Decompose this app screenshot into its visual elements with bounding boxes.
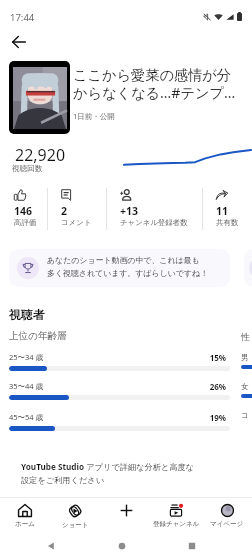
staticText: 性 bbox=[241, 331, 250, 342]
button[interactable]: +13 bbox=[106, 186, 202, 232]
button[interactable]: Create bbox=[101, 497, 151, 535]
staticText: 15% bbox=[9, 352, 226, 363]
staticText: あなたのショート動画の中で、これは最も 多く視聴されています。すばらしいですね！ bbox=[47, 255, 219, 278]
button[interactable]: 11 bbox=[202, 186, 252, 232]
button[interactable]: マイページ bbox=[202, 497, 252, 535]
staticText: 2 bbox=[61, 204, 68, 218]
staticText: チャンネル登録者数 bbox=[120, 218, 188, 227]
staticText: ショート bbox=[62, 521, 89, 529]
staticText: ホーム bbox=[15, 520, 35, 528]
button[interactable]: ショート bbox=[50, 497, 100, 535]
staticText: 男 bbox=[241, 353, 249, 362]
button[interactable]: あなたのショート動画の中で、これは最も 多く視聴されています。すばらしいですね！ bbox=[9, 249, 230, 287]
button[interactable]: 25〜34 歳 bbox=[9, 352, 230, 376]
staticText: 1日前・公開 bbox=[73, 111, 115, 121]
button[interactable]: 登録チャンネル bbox=[151, 497, 201, 535]
staticText: ここから愛菜の感情が分からなくなる…#テンプ… bbox=[73, 66, 243, 102]
staticText: 25〜34 歳 bbox=[9, 352, 44, 362]
staticText: 視聴回数 bbox=[12, 164, 43, 174]
staticText: 45〜54 歳 bbox=[9, 412, 44, 422]
staticText: 26% bbox=[9, 381, 226, 392]
button[interactable]: 2 bbox=[47, 186, 106, 232]
staticText: 登録チャンネル bbox=[153, 520, 200, 528]
staticText: YouTube Studio アプリで詳細な分析と高度な 設定をご利用ください bbox=[21, 461, 217, 485]
staticText: 17:44 bbox=[10, 11, 35, 24]
button[interactable]: 45〜54 歳 bbox=[9, 412, 230, 436]
button[interactable]: ここから愛菜の感情が分からなくなる…#テンプ… bbox=[0, 60, 252, 136]
staticText: コ bbox=[241, 411, 249, 420]
button[interactable]: YouTube Studio アプリで詳細な分析と高度な 設定をご利用ください bbox=[9, 455, 240, 500]
staticText: 146 bbox=[14, 204, 33, 218]
staticText: 女 bbox=[241, 382, 249, 391]
staticText: 共有数 bbox=[216, 218, 239, 227]
staticText: 上位の年齢層 bbox=[9, 330, 67, 342]
button[interactable]: ホーム bbox=[0, 497, 50, 535]
staticText: 35〜44 歳 bbox=[9, 381, 44, 391]
staticText: 22,920 bbox=[15, 144, 66, 166]
button[interactable]: 35〜44 歳 bbox=[9, 381, 230, 405]
staticText: 視聴者 bbox=[9, 308, 45, 323]
staticText: マイページ bbox=[210, 520, 244, 528]
staticText: コメント bbox=[61, 218, 92, 227]
staticText: 高評価 bbox=[14, 218, 37, 227]
button[interactable]: 146 bbox=[0, 186, 47, 232]
button[interactable]: Back bbox=[5, 28, 33, 56]
staticText: +13 bbox=[120, 204, 139, 218]
staticText: 19% bbox=[9, 412, 226, 423]
button[interactable] bbox=[244, 249, 252, 287]
staticText: 11 bbox=[216, 204, 229, 218]
